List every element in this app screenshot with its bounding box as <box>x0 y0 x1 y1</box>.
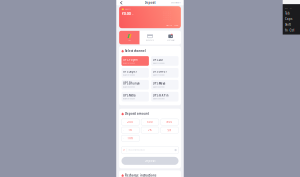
button[interactable]: UPI-mXPin <box>151 92 178 101</box>
staticText: F1 <box>290 8 292 9</box>
staticText: esc <box>285 8 288 9</box>
button[interactable]: Bank Card <box>140 31 160 44</box>
staticText: UPI-LIO <box>153 58 163 61</box>
staticText: 1K <box>128 128 132 132</box>
staticText: Balance 100 - 20K <box>123 98 135 100</box>
staticText: UPI-mXPin <box>153 94 169 97</box>
staticText: Balance 300 - 30K <box>153 98 165 100</box>
button[interactable]: UPI-Bhunya <box>121 80 149 90</box>
staticText: 2K <box>148 128 152 132</box>
button[interactable]: Withdraw <box>166 25 172 26</box>
staticText: 5K <box>167 128 171 132</box>
staticText: Recharge instructions <box>125 174 156 177</box>
button[interactable]: Deposit history <box>171 2 181 4</box>
staticText: 10K <box>127 136 133 140</box>
staticText: ₹0.00 <box>122 11 131 16</box>
staticText: Select channel <box>125 49 146 53</box>
button[interactable]: ₹ <box>141 127 159 133</box>
button[interactable]: ₹ <box>161 127 178 133</box>
staticText: INR <box>132 14 134 16</box>
button[interactable]: ₹ <box>121 127 139 133</box>
staticText: UPI-Omer <box>153 70 167 73</box>
button[interactable]: ₹ <box>121 135 139 141</box>
button[interactable]: UPI-Paytm <box>121 56 149 66</box>
button[interactable]: UPI <box>119 31 140 44</box>
staticText: Balance <box>125 8 131 10</box>
staticText: Deposit amount <box>125 112 149 115</box>
button[interactable]: ₹ <box>141 119 159 125</box>
staticText: Balance 100 - 30K <box>123 74 135 76</box>
staticText: UPI-Mitra <box>123 94 136 97</box>
staticText: Deposit <box>144 159 155 163</box>
staticText: ₹ <box>123 148 125 152</box>
staticText: Details › <box>174 25 178 26</box>
button[interactable]: USDT Wallet <box>160 31 181 44</box>
staticText: UPI-Bhunya <box>123 82 140 85</box>
button[interactable]: UPI-Super <box>121 68 149 78</box>
button[interactable]: ₹ <box>121 119 139 125</box>
button[interactable]: Deposit <box>121 157 178 165</box>
button[interactable]: Details › <box>174 25 178 26</box>
staticText: Deposit <box>144 1 155 4</box>
staticText: Ctrl <box>289 29 294 32</box>
button[interactable]: UPI-Mitra <box>121 92 149 101</box>
staticText: UPI-Maya <box>153 82 166 85</box>
staticText: Tab <box>285 12 290 15</box>
staticText: 500 <box>147 120 153 124</box>
staticText: UPI-Super <box>123 70 137 73</box>
staticText: fn <box>285 29 288 32</box>
staticText: Bank Card <box>146 39 154 41</box>
button[interactable]: UPI-LIO <box>151 56 178 66</box>
button[interactable]: ₹ <box>161 119 178 125</box>
staticText: UPI-Paytm <box>123 58 138 61</box>
staticText: Balance 100 - 50K <box>123 62 135 64</box>
staticText: Caps <box>285 17 292 21</box>
staticText: Balance 100 - 50K <box>153 62 165 64</box>
staticText: 800 <box>166 120 172 124</box>
staticText: Balance 100 - 30K <box>153 74 165 76</box>
staticText: Withdraw <box>166 25 172 26</box>
staticText: USDT Wallet <box>167 39 174 41</box>
button[interactable]: UPI-Maya <box>151 80 178 90</box>
staticText: 200 <box>127 120 133 124</box>
button[interactable]: Back <box>119 0 124 5</box>
staticText: Deposit history <box>171 2 181 4</box>
staticText: Shift <box>285 23 291 27</box>
staticText: UPI <box>128 39 130 41</box>
button[interactable]: UPI-Omer <box>151 68 178 78</box>
staticText: Balance 200 - 40K <box>153 86 165 88</box>
